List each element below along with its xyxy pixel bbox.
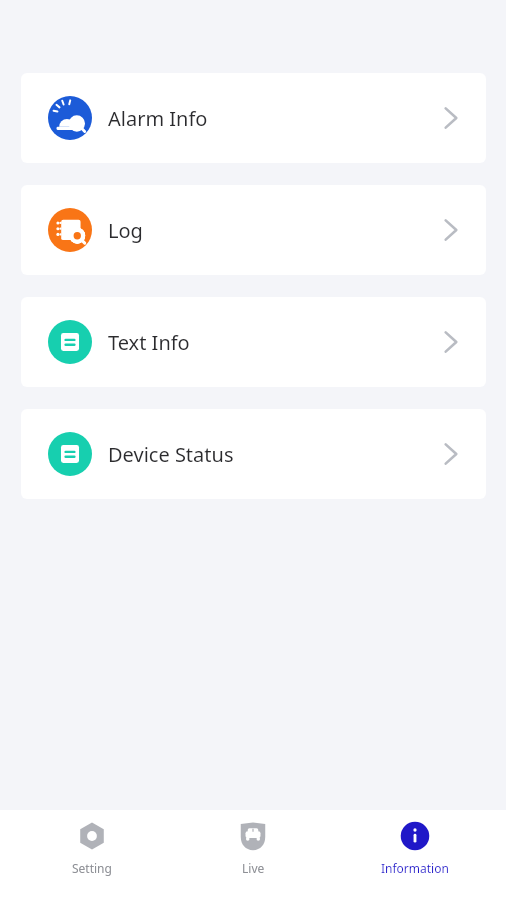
button[interactable]: Live [183,810,323,900]
button[interactable]: Setting [22,810,162,900]
staticText: Text Info [108,329,190,356]
staticText: Information [381,860,449,876]
staticText: Setting [72,860,112,876]
other: Information [398,819,432,853]
button[interactable]: Text Info [21,297,486,387]
staticText: Device Status [108,441,234,468]
staticText: Alarm Info [108,105,208,132]
staticText: Live [242,860,265,876]
staticText: Log [108,217,143,244]
other: Live [236,819,270,853]
button[interactable]: Log [21,185,486,275]
button[interactable]: Device Status [21,409,486,499]
button[interactable]: Alarm Info [21,73,486,163]
button[interactable]: Information [345,810,485,900]
other: Setting [75,819,109,853]
